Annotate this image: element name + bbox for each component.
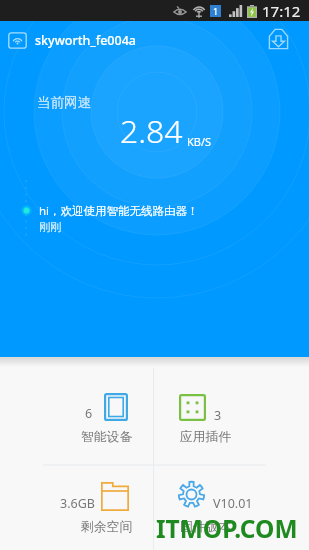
staticText: 3: [214, 407, 222, 424]
staticText: 固件版本: [180, 519, 232, 535]
staticText: 智能设备: [81, 429, 133, 445]
staticText: 刚刚: [39, 220, 61, 234]
staticText: 3.6GB: [60, 495, 95, 512]
button[interactable]: Downloads: [264, 25, 292, 53]
staticText: KB/S: [187, 134, 212, 149]
button[interactable]: [43, 357, 153, 464]
staticText: 17:12: [262, 1, 301, 21]
button[interactable]: [154, 465, 266, 550]
staticText: 当前网速: [37, 94, 91, 111]
staticText: hi，欢迎使用智能无线路由器！: [39, 203, 199, 219]
staticText: 剩余空间: [81, 519, 133, 535]
staticText: 应用插件: [180, 429, 232, 445]
staticText: V10.01: [213, 495, 253, 512]
staticText: 1: [213, 5, 219, 17]
staticText: 6: [85, 405, 93, 422]
staticText: skyworth_fe004a: [35, 32, 136, 49]
button[interactable]: [43, 465, 153, 550]
staticText: 2.84: [120, 109, 183, 153]
staticText: ITMOP.COM: [156, 512, 298, 545]
button[interactable]: [154, 357, 266, 464]
button[interactable]: skyworth_fe004a: [8, 32, 136, 49]
